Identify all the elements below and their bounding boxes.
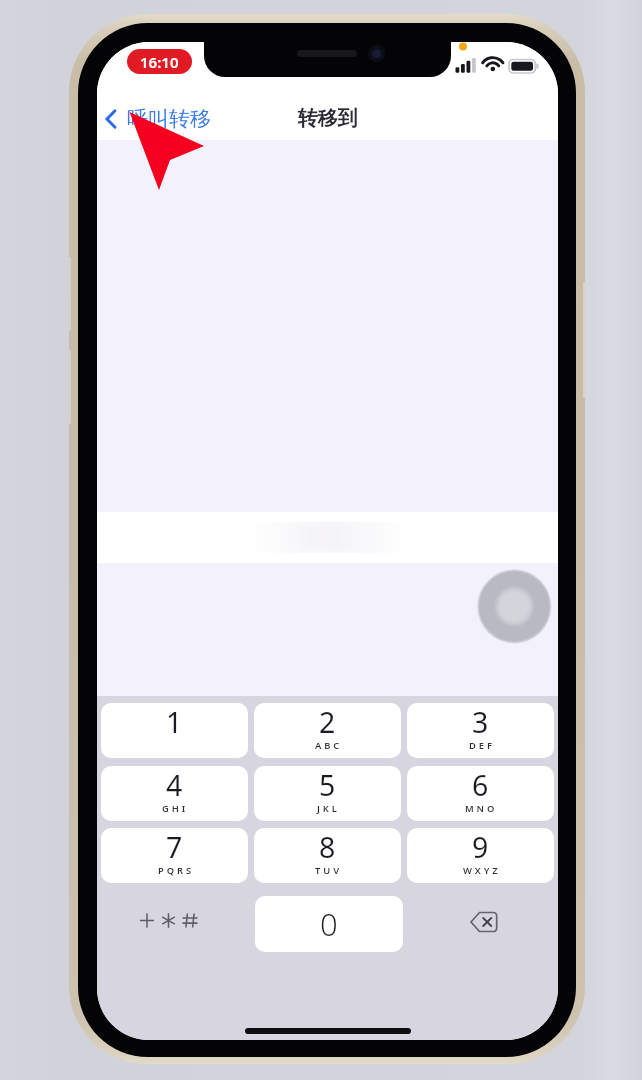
button[interactable]: 2 xyxy=(254,703,401,758)
staticText: 2 xyxy=(319,703,336,742)
button[interactable]: 8 xyxy=(254,828,401,883)
staticText: JKL xyxy=(317,802,340,815)
staticText: PQRS xyxy=(158,864,194,877)
staticText: 7 xyxy=(166,828,183,867)
staticText: 1 xyxy=(166,703,183,742)
staticText: ABC xyxy=(315,739,343,752)
button[interactable]: 7 xyxy=(101,828,248,883)
staticText: 9 xyxy=(472,828,489,867)
button[interactable]: 呼叫转移 xyxy=(100,99,221,139)
staticText: 6 xyxy=(472,766,489,805)
staticText: 5 xyxy=(319,766,336,805)
button[interactable]: 3 xyxy=(407,703,554,758)
staticText: 3 xyxy=(472,703,489,742)
staticText: TUV xyxy=(315,864,342,877)
staticText: 转移到 xyxy=(97,106,558,131)
button[interactable]: 4 xyxy=(101,766,248,821)
button[interactable]: 6 xyxy=(407,766,554,821)
staticText: 4 xyxy=(166,766,183,805)
button[interactable]: Symbols xyxy=(101,896,248,952)
button[interactable]: 0 xyxy=(255,896,403,952)
button[interactable]: 5 xyxy=(254,766,401,821)
staticText: 0 xyxy=(320,903,338,945)
button[interactable]: Backspace xyxy=(407,896,554,952)
button[interactable]: 9 xyxy=(407,828,554,883)
button[interactable]: 1 xyxy=(101,703,248,758)
staticText: WXYZ xyxy=(463,864,501,877)
staticText: MNO xyxy=(465,802,498,815)
button[interactable] xyxy=(97,512,558,563)
staticText: 呼叫转移 xyxy=(127,106,211,132)
staticText: 8 xyxy=(319,828,336,867)
staticText: 16:10 xyxy=(140,52,179,72)
staticText: GHI xyxy=(162,802,189,815)
staticText: DEF xyxy=(469,739,495,752)
